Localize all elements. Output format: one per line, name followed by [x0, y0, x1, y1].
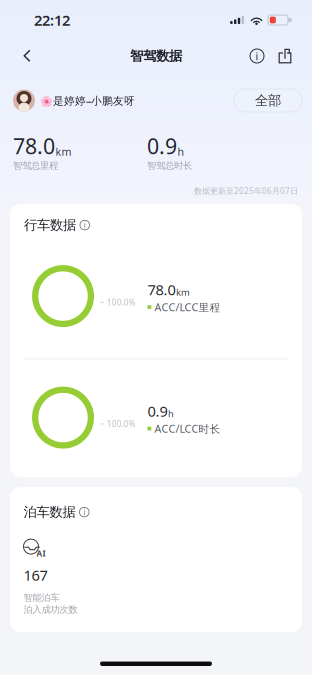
staticText: 0.9 — [147, 401, 167, 421]
staticText: 数据更新至2025年06月07日 — [194, 185, 298, 196]
staticText: 智驾数据 — [130, 48, 182, 64]
staticText: AI — [36, 548, 45, 559]
staticText: 167 — [23, 565, 47, 585]
button[interactable]: Share — [272, 42, 298, 70]
staticText: i — [84, 220, 86, 230]
button[interactable]: Back — [12, 42, 42, 70]
staticText: 🌸是婷婷–小鹏友呀 — [40, 93, 135, 108]
staticText: 100.0% — [107, 297, 136, 308]
staticText: ACC/LCC里程 — [154, 300, 220, 314]
staticText: i — [255, 49, 258, 63]
staticText: km — [55, 144, 71, 159]
staticText: h — [177, 144, 184, 159]
staticText: 泊入成功次数 — [23, 604, 77, 615]
staticText: 行车数据 — [24, 217, 76, 233]
staticText: 全部 — [255, 92, 281, 109]
staticText: 0.9 — [147, 132, 177, 160]
staticText: 78.0 — [13, 132, 55, 160]
button[interactable]: Info — [242, 42, 272, 70]
staticText: 智驾总时长 — [147, 160, 192, 171]
staticText: 泊车数据 — [23, 504, 75, 520]
staticText: i — [83, 507, 85, 517]
staticText: 智驾总里程 — [13, 160, 58, 171]
staticText: h — [168, 407, 174, 420]
staticText: 78.0 — [147, 280, 175, 299]
staticText: 智能泊车 — [23, 592, 59, 603]
staticText: 100.0% — [107, 419, 136, 429]
button[interactable]: 全部 — [234, 89, 302, 112]
staticText: ACC/LCC时长 — [154, 421, 220, 436]
staticText: 22:12 — [34, 10, 70, 30]
staticText: km — [176, 286, 190, 298]
